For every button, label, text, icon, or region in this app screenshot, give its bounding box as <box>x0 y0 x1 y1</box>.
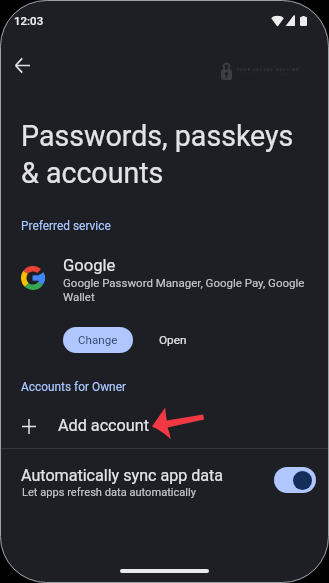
button[interactable]: Change <box>63 327 133 353</box>
button[interactable]: Open <box>147 327 199 353</box>
staticText: Let apps refresh data automatically <box>22 486 197 499</box>
button[interactable]: Google <box>0 250 329 308</box>
staticText: Google Password Manager, Google Pay, Goo… <box>63 276 305 304</box>
staticText: Open <box>159 333 187 347</box>
button[interactable]: Automatically sync app data <box>0 452 329 504</box>
button[interactable]: Add account <box>0 405 329 445</box>
staticText: Passwords, passkeys & accounts <box>21 119 294 190</box>
button[interactable]: Navigate up <box>8 51 37 80</box>
staticText: Google <box>63 256 116 275</box>
button[interactable]: Automatically sync app data <box>274 467 316 493</box>
staticText: YOUR SECURE HOSTING <box>237 67 300 72</box>
staticText: Preferred service <box>21 219 111 233</box>
staticText: Change <box>78 333 118 347</box>
staticText: Accounts for Owner <box>21 380 126 394</box>
staticText: Automatically sync app data <box>21 466 224 485</box>
staticText: 12:03 <box>14 14 44 27</box>
staticText: Add account <box>58 416 149 435</box>
